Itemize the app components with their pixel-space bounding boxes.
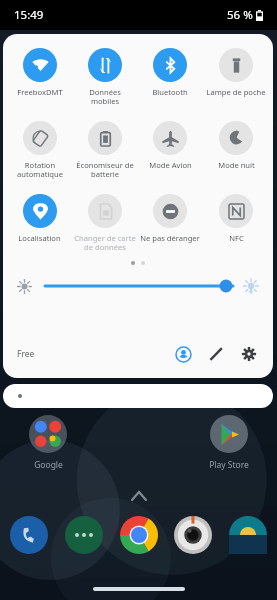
button[interactable]: User [171, 342, 195, 366]
button[interactable]: Messages [65, 516, 103, 554]
button[interactable]: Données mobiles [72, 48, 137, 107]
button[interactable]: Settings [237, 342, 261, 366]
button[interactable] [45, 276, 233, 296]
button[interactable]: Play Store [193, 415, 265, 471]
button[interactable]: Bluetooth [137, 48, 203, 97]
button[interactable]: Ne pas déranger [137, 194, 203, 243]
button[interactable] [3, 384, 273, 408]
staticText: 56 % [227, 7, 253, 23]
staticText: Play Store [209, 459, 249, 471]
button[interactable]: Mode nuit [203, 121, 269, 170]
button[interactable]: Camera [174, 516, 212, 554]
button[interactable]: NFC [203, 194, 269, 243]
button[interactable]: Économiseur de batterie [72, 121, 137, 180]
button[interactable]: Mode Avion [137, 121, 203, 170]
button[interactable]: Localisation [7, 194, 72, 243]
staticText: Bluetooth [152, 87, 188, 97]
staticText: Économiseur de batterie [76, 160, 134, 180]
button[interactable]: Weather [229, 516, 267, 554]
staticText: Google [34, 459, 63, 471]
button[interactable]: Edit [204, 342, 228, 366]
button[interactable]: Chrome [120, 516, 158, 554]
staticText: Lampe de poche [206, 87, 266, 97]
staticText: NFC [229, 233, 244, 243]
button[interactable]: FreeboxDMT [7, 48, 72, 97]
other: Auto brightness [243, 278, 259, 294]
button[interactable]: Free [17, 348, 35, 360]
staticText: Données mobiles [89, 87, 121, 107]
button[interactable]: Lampe de poche [203, 48, 269, 97]
staticText: 15:49 [14, 7, 44, 23]
staticText: Free [17, 348, 35, 360]
staticText: Mode Avion [149, 160, 192, 170]
button[interactable]: Changer de carte de données [72, 194, 137, 253]
button[interactable]: Rotation automatique [7, 121, 72, 180]
other: Low brightness [17, 279, 32, 294]
staticText: Mode nuit [218, 160, 255, 170]
staticText: Localisation [18, 233, 61, 243]
button[interactable]: Google [12, 415, 84, 471]
staticText: Rotation automatique [17, 160, 63, 180]
staticText: FreeboxDMT [17, 87, 63, 97]
staticText: Ne pas déranger [140, 233, 200, 243]
staticText: Changer de carte de données [74, 233, 136, 253]
button[interactable]: Phone [10, 516, 48, 554]
